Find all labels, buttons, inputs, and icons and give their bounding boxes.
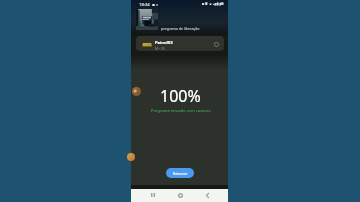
- staticText: M • 05: [155, 46, 165, 51]
- staticText: Programa enviado com sucesso: [151, 108, 211, 113]
- button[interactable]: Back: [201, 189, 213, 201]
- button[interactable]: Options: [212, 40, 220, 48]
- button[interactable]: Retornar: [166, 168, 194, 178]
- staticText: 18:34: [139, 2, 150, 8]
- button[interactable]: Chat bubble: [127, 153, 135, 161]
- staticText: RVDC: [143, 43, 152, 47]
- button[interactable]: Chat bubble: [132, 87, 141, 96]
- staticText: Painel03: [155, 40, 173, 46]
- button[interactable]: Recent apps: [147, 189, 159, 201]
- staticText: 100%: [160, 85, 201, 107]
- button[interactable]: Home: [174, 189, 186, 201]
- staticText: 39%: [214, 2, 222, 7]
- button[interactable]: programa de liberação: [161, 26, 200, 31]
- staticText: Retornar: [173, 171, 188, 176]
- button[interactable]: RVDC: [136, 36, 224, 51]
